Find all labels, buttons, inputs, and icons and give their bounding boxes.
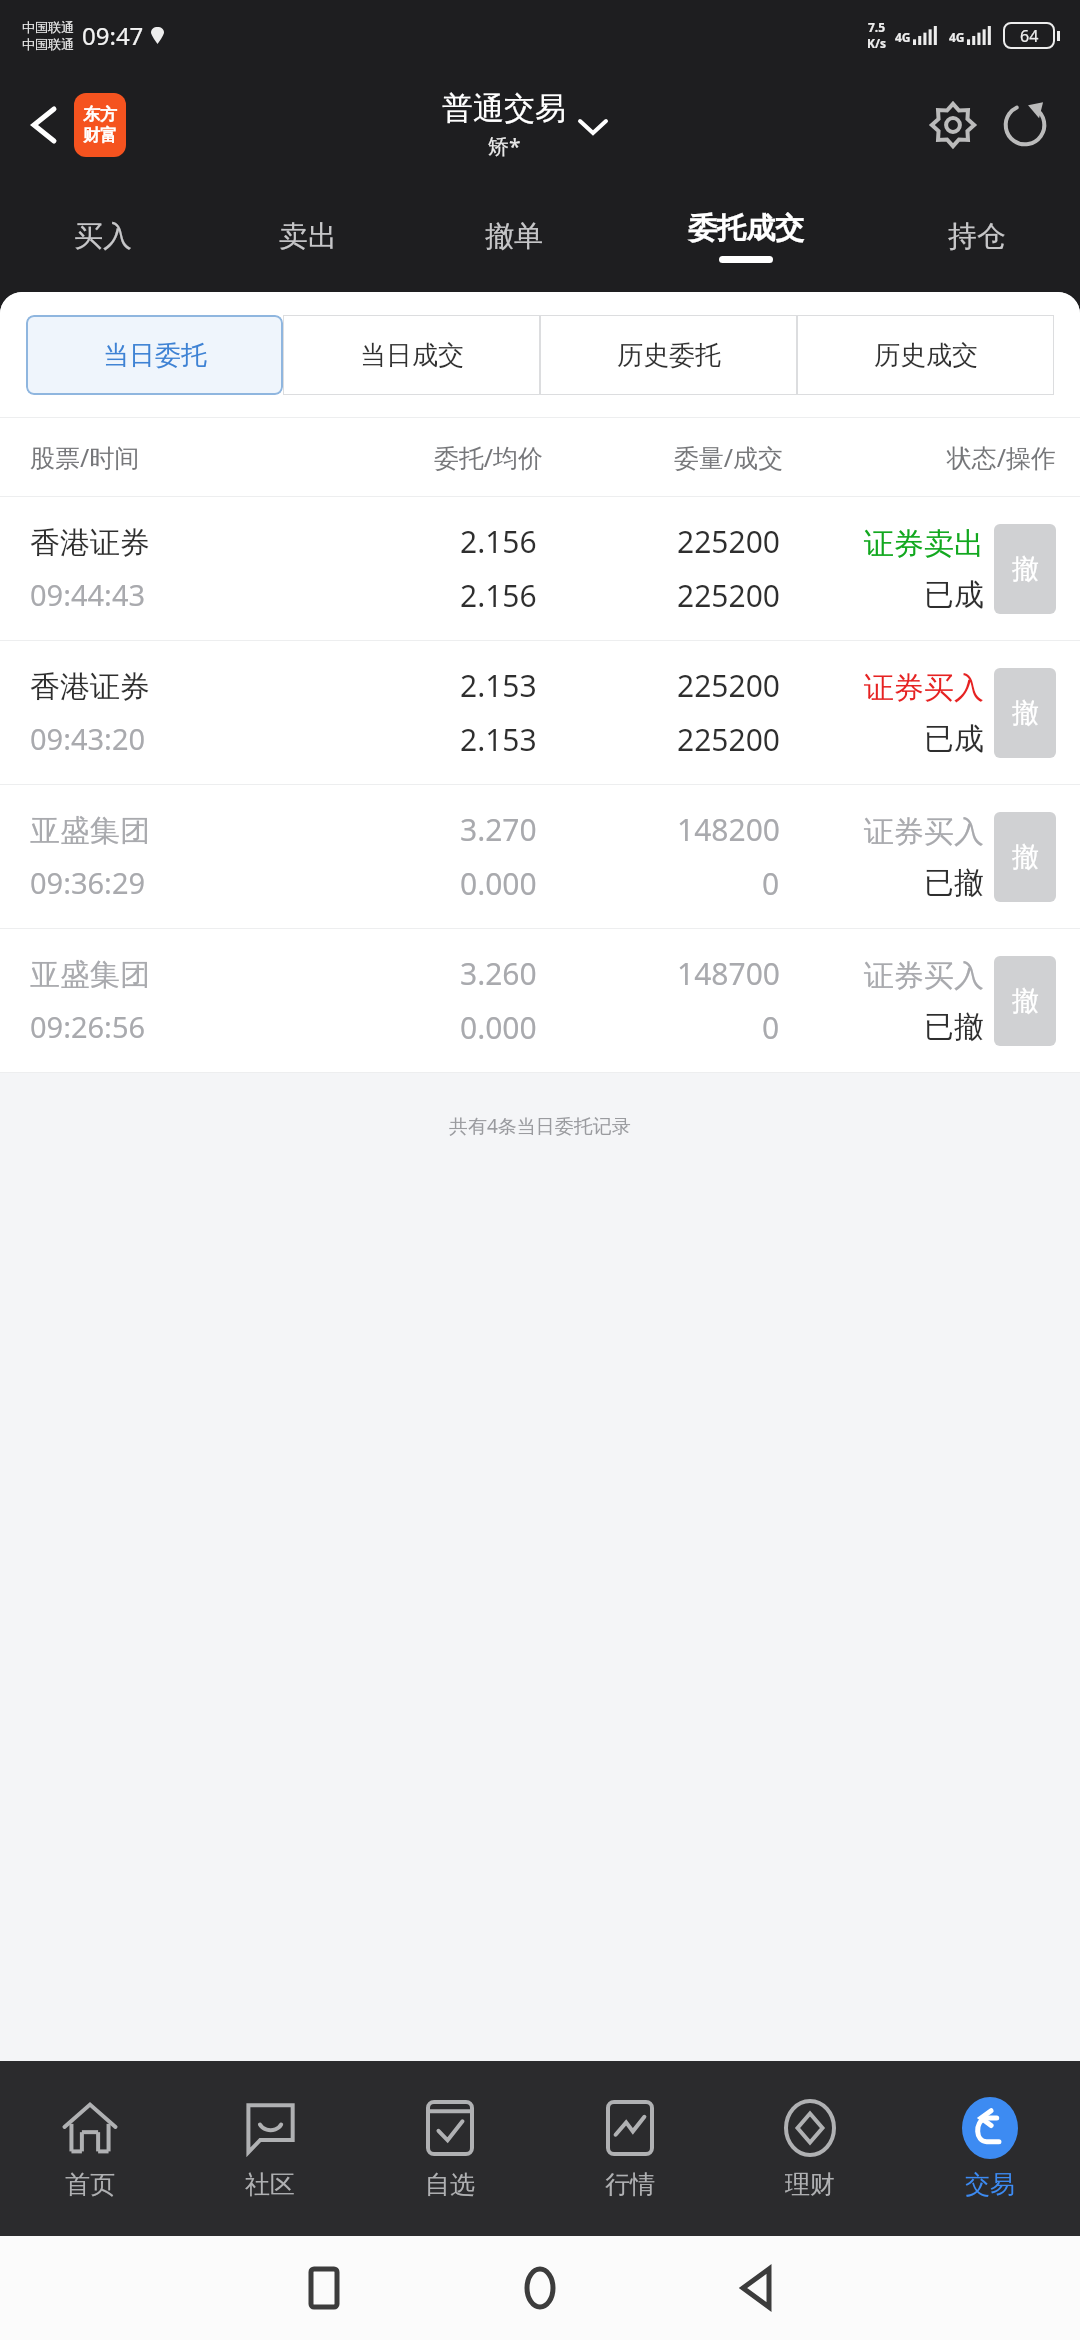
staticText: 148200 (677, 809, 780, 850)
button[interactable]: 卖出 (205, 180, 411, 292)
staticText: K/s (867, 35, 886, 51)
staticText: 东方 (83, 104, 117, 125)
staticText: 225200 (677, 575, 780, 616)
staticText: 已成 (924, 720, 984, 758)
staticText: 2.153 (460, 719, 537, 760)
staticText: 225200 (677, 665, 780, 706)
button[interactable]: 撤 (994, 524, 1056, 614)
staticText: 2.156 (460, 575, 537, 616)
button[interactable]: 历史委托 (540, 315, 797, 395)
staticText: 7.5 (868, 19, 886, 35)
button[interactable]: Back (648, 2236, 864, 2340)
staticText: 撤 (1012, 840, 1039, 874)
staticText: 委量/成交 (543, 440, 783, 474)
staticText: 香港证券 (30, 668, 150, 706)
button[interactable]: 理财 (720, 2061, 900, 2236)
staticText: 09:26:56 (30, 1007, 146, 1046)
staticText: 0.000 (460, 863, 537, 904)
button[interactable]: Recents (216, 2236, 432, 2340)
staticText: 09:47 (82, 19, 144, 52)
button[interactable]: 当日委托 (26, 315, 283, 395)
staticText: 09:44:43 (30, 575, 146, 614)
staticText: 4G (895, 29, 911, 45)
staticText: 09:36:29 (30, 863, 146, 902)
button[interactable]: 历史成交 (797, 315, 1054, 395)
staticText: 撤 (1012, 984, 1039, 1018)
button[interactable]: 亚盛集团 (0, 929, 1080, 1072)
staticText: 首页 (65, 2169, 115, 2200)
staticText: 证券买入 (864, 957, 984, 995)
staticText: 矫* (488, 132, 521, 161)
staticText: 撤单 (485, 218, 543, 255)
button[interactable]: 委托成交 (617, 180, 874, 292)
button[interactable]: 香港证券 (0, 641, 1080, 784)
button[interactable]: 撤 (994, 668, 1056, 758)
staticText: 中国联通 (22, 19, 74, 35)
staticText: 财富 (83, 125, 117, 146)
staticText: 3.270 (460, 809, 537, 850)
staticText: 已撤 (924, 864, 984, 902)
staticText: 证券买入 (864, 669, 984, 707)
button[interactable]: 当日成交 (283, 315, 540, 395)
staticText: 中国联通 (22, 36, 74, 52)
staticText: 持仓 (948, 218, 1006, 255)
staticText: 理财 (785, 2169, 835, 2200)
staticText: 0 (762, 1007, 780, 1048)
staticText: 历史委托 (617, 339, 721, 372)
button[interactable]: 撤单 (411, 180, 617, 292)
button[interactable]: 首页 (0, 2061, 180, 2236)
staticText: 委托/均价 (303, 440, 543, 474)
button[interactable]: Back (18, 99, 70, 151)
staticText: 行情 (605, 2169, 655, 2200)
staticText: 状态/操作 (783, 440, 1056, 474)
button[interactable]: 东方 (74, 93, 126, 157)
staticText: 0 (762, 863, 780, 904)
staticText: 社区 (245, 2169, 295, 2200)
button[interactable]: 交易 (900, 2061, 1080, 2236)
button[interactable]: 香港证券 (0, 497, 1080, 640)
button[interactable]: Refresh (994, 94, 1056, 156)
staticText: 香港证券 (30, 524, 150, 562)
staticText: 买入 (74, 218, 132, 255)
button[interactable]: 普通交易 (442, 89, 606, 161)
button[interactable]: Settings (922, 94, 984, 156)
staticText: 撤 (1012, 696, 1039, 730)
staticText: 普通交易 (442, 89, 566, 128)
staticText: 已撤 (924, 1008, 984, 1046)
staticText: 历史成交 (874, 339, 978, 372)
staticText: 当日成交 (360, 339, 464, 372)
staticText: 自选 (425, 2169, 475, 2200)
staticText: 共有4条当日委托记录 (449, 1113, 631, 1139)
button[interactable]: 自选 (360, 2061, 540, 2236)
staticText: 证券买入 (864, 813, 984, 851)
staticText: 当日委托 (103, 339, 207, 372)
staticText: 09:43:20 (30, 719, 146, 758)
staticText: 交易 (965, 2169, 1015, 2200)
staticText: 148700 (677, 953, 780, 994)
staticText: 委托成交 (688, 210, 804, 247)
button[interactable]: 行情 (540, 2061, 720, 2236)
staticText: 亚盛集团 (30, 956, 150, 994)
button[interactable]: 亚盛集团 (0, 785, 1080, 928)
staticText: 2.153 (460, 665, 537, 706)
staticText: 225200 (677, 719, 780, 760)
staticText: 2.156 (460, 521, 537, 562)
staticText: 3.260 (460, 953, 537, 994)
staticText: 股票/时间 (30, 440, 303, 474)
staticText: 4G (949, 29, 965, 45)
staticText: 225200 (677, 521, 780, 562)
button[interactable]: 撤 (994, 956, 1056, 1046)
staticText: 64 (1020, 25, 1039, 47)
staticText: 撤 (1012, 552, 1039, 586)
staticText: 0.000 (460, 1007, 537, 1048)
button[interactable]: Home (432, 2236, 648, 2340)
button[interactable]: 社区 (180, 2061, 360, 2236)
staticText: 已成 (924, 576, 984, 614)
staticText: 亚盛集团 (30, 812, 150, 850)
button[interactable]: 撤 (994, 812, 1056, 902)
button[interactable]: 买入 (0, 180, 205, 292)
staticText: 卖出 (279, 218, 337, 255)
button[interactable]: 持仓 (874, 180, 1080, 292)
staticText: 证券卖出 (864, 525, 984, 563)
